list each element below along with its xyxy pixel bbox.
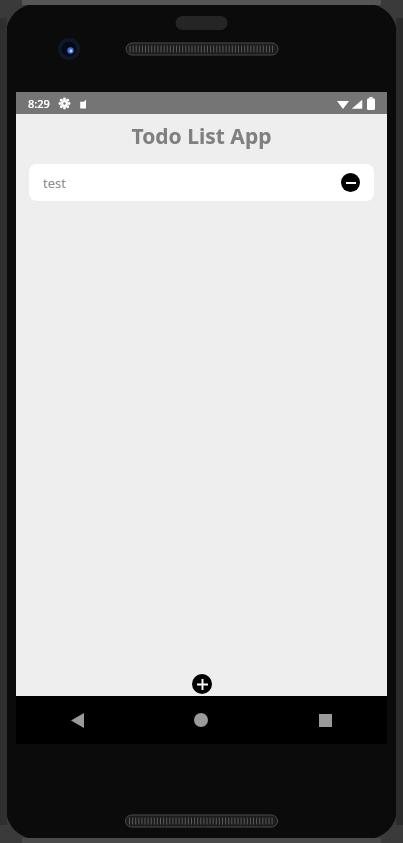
staticText: 8:29	[28, 96, 50, 111]
button[interactable]: test	[29, 164, 374, 201]
button[interactable]: Back	[16, 696, 139, 744]
staticText: test	[43, 174, 341, 192]
staticText: Todo List App	[16, 122, 387, 151]
button[interactable]: Remove todo	[341, 173, 360, 192]
button[interactable]: Recent apps	[263, 696, 387, 744]
button[interactable]: Home	[139, 696, 263, 744]
button[interactable]: Add todo	[192, 674, 212, 694]
